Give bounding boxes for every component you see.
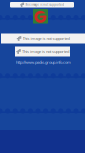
- button[interactable]: http://www.padie-group.info.com: [16, 59, 71, 65]
- staticText: This image is not supported: [22, 49, 69, 54]
- button[interactable]: This image is not supported: [10, 2, 74, 7]
- button[interactable]: This image is not supported: [1, 33, 85, 43]
- staticText: http://www.padie-group.info.com: [16, 59, 71, 65]
- staticText: This image is not supported: [25, 3, 64, 6]
- button[interactable]: This image is not supported: [15, 46, 70, 56]
- staticText: This image is not supported: [22, 36, 69, 41]
